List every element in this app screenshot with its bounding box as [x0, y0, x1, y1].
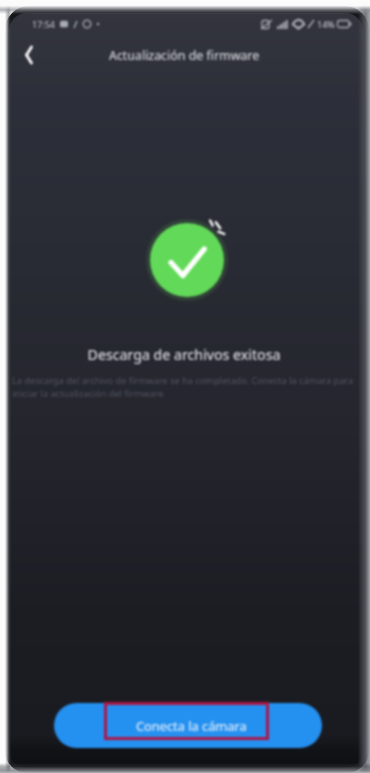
staticText: La descarga del archivo de firmware se h…: [12, 374, 360, 400]
button[interactable]: Atrás: [13, 40, 43, 70]
staticText: 17:54: [32, 18, 56, 30]
staticText: Conecta la cámara: [136, 717, 247, 734]
staticText: Actualización de firmware: [109, 47, 260, 64]
staticText: Descarga de archivos exitosa: [9, 345, 361, 364]
staticText: 14%: [317, 18, 335, 30]
button[interactable]: Conecta la cámara: [54, 703, 322, 748]
